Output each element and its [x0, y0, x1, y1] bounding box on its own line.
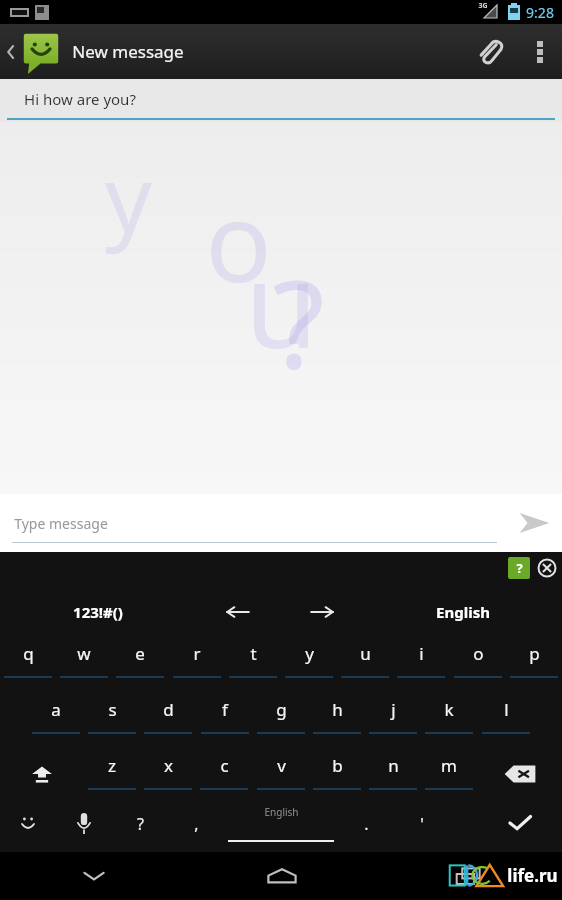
staticText: , [194, 813, 199, 835]
button[interactable]: u [337, 634, 393, 690]
button[interactable]: ' [394, 802, 450, 852]
button[interactable]: , [168, 802, 224, 852]
staticText: f [222, 698, 228, 721]
staticText: w [77, 642, 91, 665]
staticText: ' [420, 813, 424, 835]
staticText: x [164, 754, 173, 777]
button[interactable]: d [140, 690, 196, 746]
other: Back [4, 37, 18, 67]
staticText: life.ru [507, 864, 558, 887]
staticText: . [364, 813, 369, 835]
button[interactable]: i [393, 634, 449, 690]
button[interactable]: q [0, 634, 56, 690]
staticText: o [473, 642, 484, 665]
button[interactable]: h [309, 690, 365, 746]
button[interactable]: g [253, 690, 309, 746]
button[interactable]: j [365, 690, 421, 746]
staticText: q [23, 642, 34, 665]
button[interactable]: Close keyboard [535, 556, 559, 580]
button[interactable]: z [84, 746, 140, 802]
staticText: u [245, 222, 318, 383]
staticText: 9:28 [526, 3, 554, 22]
button[interactable]: ? [508, 557, 530, 579]
button[interactable]: v [253, 746, 309, 802]
button[interactable]: Recent apps [375, 852, 562, 900]
button[interactable]: Voice input [56, 802, 112, 852]
button[interactable]: c [196, 746, 252, 802]
button[interactable]: a [28, 690, 84, 746]
staticText: b [332, 754, 343, 777]
staticText: c [220, 754, 229, 777]
staticText: m [441, 754, 457, 777]
button[interactable]: . [338, 802, 394, 852]
button[interactable]: k [421, 690, 477, 746]
button[interactable]: r [169, 634, 225, 690]
staticText: k [444, 698, 454, 721]
button[interactable]: Emoji [0, 802, 56, 852]
staticText: v [277, 754, 286, 777]
staticText: r [193, 642, 201, 665]
staticText: 3G [478, 1, 488, 11]
staticText: h [332, 698, 343, 721]
button[interactable]: Back [0, 24, 184, 79]
button[interactable]: e [112, 634, 168, 690]
staticText: Hi how are you? [24, 89, 136, 109]
staticText: s [108, 698, 117, 721]
staticText: o [205, 164, 272, 314]
button[interactable]: Back [0, 852, 188, 900]
button[interactable]: Send [506, 495, 562, 551]
button[interactable]: w [56, 634, 112, 690]
staticText: p [529, 642, 540, 665]
button[interactable]: l [478, 690, 534, 746]
staticText: t [250, 642, 257, 665]
button[interactable]: x [140, 746, 196, 802]
button[interactable]: Home [188, 852, 375, 900]
button[interactable]: n [365, 746, 421, 802]
staticText: English [436, 602, 490, 622]
staticText: l [504, 698, 509, 721]
staticText: i [419, 642, 424, 665]
staticText: 123!#() [73, 602, 123, 622]
button[interactable]: Shift [0, 746, 84, 802]
staticText: u [360, 642, 371, 665]
staticText: e [135, 642, 145, 665]
button[interactable]: More options [518, 24, 562, 79]
staticText: g [276, 698, 287, 721]
button[interactable]: Backspace [478, 746, 562, 802]
staticText: a [51, 698, 61, 721]
staticText: ? [516, 559, 523, 577]
staticText: Type message [14, 514, 108, 533]
button[interactable]: t [225, 634, 281, 690]
staticText: j [391, 698, 396, 721]
staticText: ? [137, 813, 144, 835]
button[interactable]: English [424, 590, 502, 634]
staticText: d [163, 698, 174, 721]
button[interactable]: m [421, 746, 477, 802]
button[interactable]: Type message [12, 503, 497, 543]
staticText: New message [72, 40, 184, 63]
button[interactable]: Move cursor right [298, 590, 346, 634]
button[interactable]: o [450, 634, 506, 690]
button[interactable]: ? [112, 802, 168, 852]
button[interactable]: Space [224, 802, 338, 852]
button[interactable]: 123!#() [60, 590, 136, 634]
button[interactable]: b [309, 746, 365, 802]
staticText: z [108, 754, 116, 777]
button[interactable]: Hi how are you? [0, 79, 562, 122]
button[interactable]: p [506, 634, 562, 690]
staticText: n [388, 754, 399, 777]
button[interactable]: Move cursor left [214, 590, 262, 634]
button[interactable]: f [197, 690, 253, 746]
button[interactable]: s [84, 690, 140, 746]
staticText: ? [272, 240, 325, 403]
staticText: English [264, 805, 299, 819]
button[interactable]: Enter [478, 802, 562, 852]
button[interactable]: y [281, 634, 337, 690]
button[interactable]: Attach [462, 24, 518, 79]
staticText: y [305, 642, 314, 665]
staticText: y [105, 134, 152, 259]
